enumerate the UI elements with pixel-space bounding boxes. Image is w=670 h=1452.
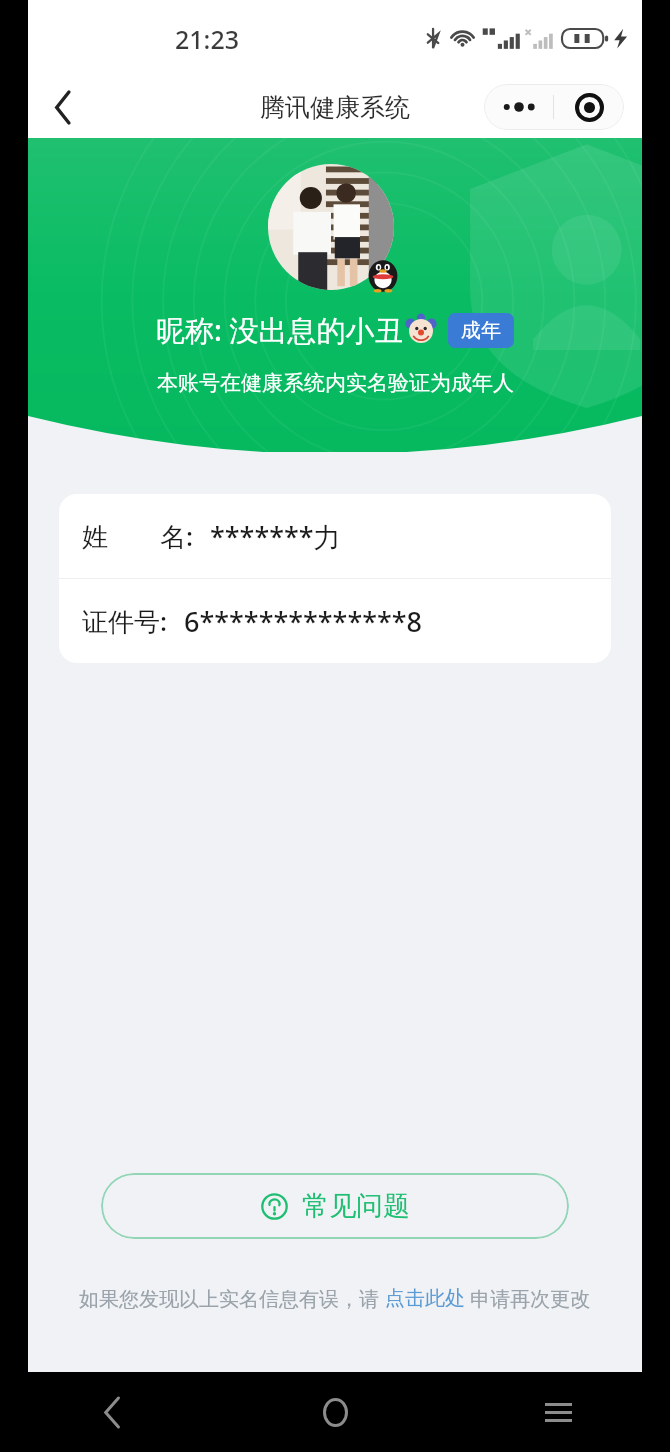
button[interactable]: Recent apps [447, 1372, 670, 1452]
button[interactable]: Profile avatar [268, 164, 394, 290]
staticText: 21:23 [175, 22, 240, 56]
staticText: 常见问题 [302, 1189, 410, 1223]
button[interactable]: Close mini program [554, 84, 624, 130]
button[interactable]: Back [0, 1372, 224, 1452]
button[interactable]: More options [484, 84, 553, 130]
staticText: 6**************8 [184, 603, 423, 640]
staticText: 申请再次更改 [465, 1285, 591, 1312]
staticText: 腾讯健康系统 [260, 92, 410, 123]
button[interactable]: Back [36, 80, 90, 134]
button[interactable]: Home [224, 1372, 447, 1452]
staticText: 点击此处 [385, 1286, 465, 1311]
staticText: 成年 [461, 318, 501, 343]
button[interactable]: 证件号: [59, 579, 611, 663]
button[interactable]: 姓 名: [59, 494, 611, 578]
staticText: 昵称: 没出息的小丑 [156, 310, 404, 350]
staticText: 姓 名: [82, 518, 194, 554]
staticText: 证件号: [82, 603, 168, 639]
button[interactable]: 点击此处 [385, 1286, 465, 1311]
staticText: 本账号在健康系统内实名验证为成年人 [157, 370, 514, 396]
staticText: 如果您发现以上实名信息有误，请 [79, 1285, 385, 1312]
button[interactable]: 常见问题 [101, 1173, 569, 1239]
staticText: *******力 [210, 518, 341, 555]
button[interactable]: 成年 [448, 313, 514, 348]
